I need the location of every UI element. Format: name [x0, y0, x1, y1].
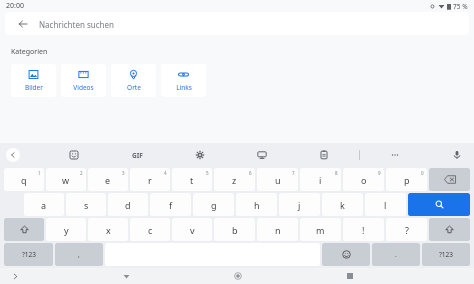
button[interactable]: Mehr [386, 146, 404, 164]
staticText: k [340, 199, 345, 211]
button[interactable]: Einstellungen [191, 146, 209, 164]
staticText: Videos [73, 83, 94, 92]
button[interactable]: Emoji [322, 243, 370, 266]
staticText: Nachrichten suchen [39, 19, 114, 30]
staticText: n [275, 224, 281, 236]
button[interactable]: Zwischenablage [315, 146, 333, 164]
button[interactable]: y [46, 218, 86, 241]
staticText: s [84, 199, 89, 211]
button[interactable]: Spracheingabe [448, 146, 466, 164]
button[interactable]: Zurück [5, 12, 469, 35]
button[interactable]: f [150, 193, 191, 216]
button[interactable]: i [300, 168, 341, 191]
staticText: f [169, 199, 173, 211]
staticText: q [21, 174, 27, 186]
button[interactable]: j [279, 193, 320, 216]
staticText: 8 [335, 170, 338, 176]
button[interactable]: Orte [111, 64, 156, 97]
button[interactable]: w [46, 168, 86, 191]
button[interactable]: h [236, 193, 277, 216]
button[interactable]: Videos [61, 64, 106, 97]
staticText: Bilder [25, 83, 43, 92]
button[interactable]: Zurück [6, 148, 20, 162]
staticText: , [78, 250, 80, 259]
button[interactable]: t [172, 168, 212, 191]
staticText: e [105, 174, 111, 186]
staticText: j [298, 199, 301, 211]
button[interactable]: g [193, 193, 234, 216]
button[interactable]: ?123 [422, 243, 470, 266]
button[interactable]: u [257, 168, 298, 191]
staticText: d [125, 199, 131, 211]
staticText: Kategorien [11, 47, 48, 57]
staticText: ! [362, 224, 365, 236]
button[interactable]: d [108, 193, 148, 216]
button[interactable]: GIF [127, 145, 147, 165]
button[interactable]: , [55, 243, 103, 266]
staticText: . [395, 250, 397, 259]
button[interactable]: Links [161, 64, 206, 97]
staticText: ?123 [439, 250, 453, 259]
staticText: Links [176, 83, 192, 92]
staticText: Orte [127, 83, 141, 92]
staticText: 20:00 [6, 1, 24, 11]
button[interactable]: ! [343, 218, 384, 241]
staticText: 2 [80, 170, 83, 176]
button[interactable]: o [343, 168, 384, 191]
button[interactable]: z [214, 168, 255, 191]
button[interactable]: Zurück [15, 16, 31, 32]
staticText: l [384, 199, 387, 211]
staticText: x [106, 224, 111, 236]
staticText: ?123 [22, 250, 36, 259]
staticText: u [275, 174, 281, 186]
button[interactable]: v [172, 218, 212, 241]
staticText: 0 [421, 170, 424, 176]
staticText: c [148, 224, 153, 236]
button[interactable]: ?123 [4, 243, 53, 266]
button[interactable]: a [24, 193, 64, 216]
button[interactable]: Umschalttaste [429, 218, 470, 241]
staticText: GIF [132, 151, 143, 160]
button[interactable]: n [257, 218, 298, 241]
staticText: m [316, 224, 325, 236]
button[interactable]: ? [386, 218, 427, 241]
button[interactable]: l [365, 193, 406, 216]
button[interactable]: Startbildschirm [231, 269, 245, 283]
staticText: i [319, 174, 322, 186]
button[interactable]: x [88, 218, 128, 241]
staticText: 5 [206, 170, 209, 176]
staticText: t [190, 174, 194, 186]
button[interactable]: c [130, 218, 170, 241]
button[interactable]: Bilder [11, 64, 56, 97]
staticText: h [254, 199, 260, 211]
button[interactable]: Suchen [408, 193, 470, 216]
button[interactable]: Translate [253, 146, 271, 164]
button[interactable]: s [66, 193, 106, 216]
staticText: y [64, 224, 69, 236]
button[interactable]: Löschen [429, 168, 470, 191]
button[interactable]: Übersicht [343, 269, 357, 283]
button[interactable]: p [386, 168, 427, 191]
button[interactable]: Sticker [65, 146, 83, 164]
staticText: a [41, 199, 47, 211]
button[interactable]: q [4, 168, 44, 191]
button[interactable]: m [300, 218, 341, 241]
button[interactable]: e [88, 168, 128, 191]
staticText: o [361, 174, 367, 186]
button[interactable]: Zurück [119, 269, 133, 283]
staticText: 6 [249, 170, 252, 176]
staticText: 75 % [453, 2, 468, 11]
button[interactable]: Umschalttaste [4, 218, 44, 241]
staticText: r [148, 174, 152, 186]
staticText: z [232, 174, 237, 186]
staticText: 3 [122, 170, 125, 176]
staticText: 9 [378, 170, 381, 176]
staticText: g [211, 199, 217, 211]
button[interactable]: Tastatur ausblenden [9, 270, 21, 282]
button[interactable]: k [322, 193, 363, 216]
button[interactable]: r [130, 168, 170, 191]
staticText: p [404, 174, 410, 186]
button[interactable]: b [214, 218, 255, 241]
